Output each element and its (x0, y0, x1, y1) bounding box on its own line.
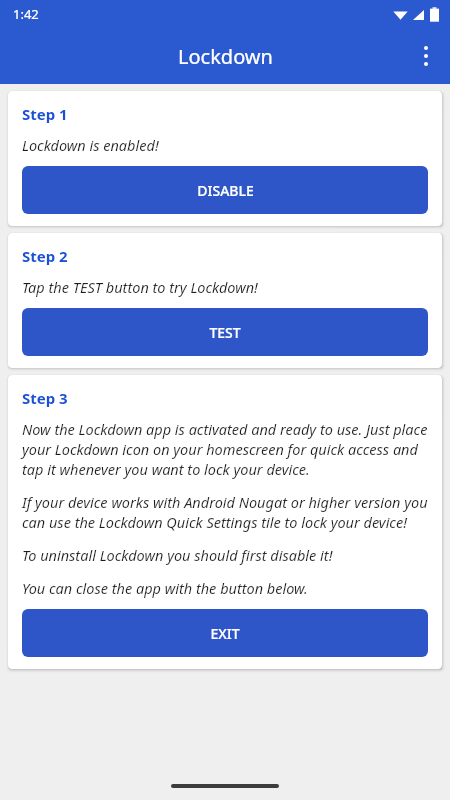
staticText: To uninstall Lockdown you should first d… (22, 545, 333, 565)
staticText: Step 1 (22, 104, 68, 124)
button[interactable]: DISABLE (22, 166, 428, 214)
staticText: Lockdown is enabled! (22, 135, 159, 155)
button[interactable]: EXIT (22, 609, 428, 657)
staticText: Step 2 (22, 246, 68, 266)
staticText: Tap the TEST button to try Lockdown! (22, 277, 258, 297)
staticText: If your device works with Android Nougat… (22, 492, 428, 532)
staticText: EXIT (210, 624, 240, 643)
staticText: 1:42 (13, 5, 39, 23)
staticText: DISABLE (197, 181, 254, 200)
button[interactable]: More options (402, 32, 450, 80)
staticText: Now the Lockdown app is activated and re… (22, 419, 428, 479)
staticText: Step 3 (22, 388, 68, 408)
staticText: TEST (209, 323, 241, 342)
button[interactable]: TEST (22, 308, 428, 356)
staticText: Lockdown (178, 43, 273, 70)
staticText: You can close the app with the button be… (22, 578, 308, 598)
